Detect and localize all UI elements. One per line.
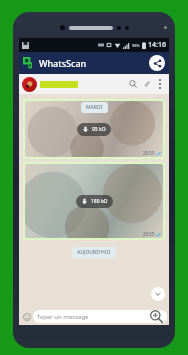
staticText: Taper un message <box>37 313 89 321</box>
staticText: AUJOURD'HUI <box>77 249 111 256</box>
staticText: 20:55 <box>143 150 155 156</box>
staticText: 14:16 <box>148 40 166 50</box>
staticText: 20:55 <box>143 231 155 237</box>
button[interactable]: Search <box>126 77 140 91</box>
button[interactable]: Taper un message <box>37 310 167 323</box>
button[interactable]: Scroll to bottom <box>151 287 165 301</box>
staticText: 98% <box>132 43 140 48</box>
button[interactable]: 95 kO <box>82 126 106 133</box>
button[interactable]: 180 kO <box>25 164 163 238</box>
staticText: 180 kO <box>91 198 108 205</box>
button[interactable]: 180 kO <box>81 198 108 205</box>
staticText: MARDI <box>86 104 103 111</box>
button[interactable]: Share <box>149 55 165 71</box>
staticText: WhatsScan <box>39 57 87 69</box>
button[interactable]: MARDI <box>25 101 163 157</box>
staticText: 95 kO <box>92 126 106 133</box>
button[interactable]: Emoji <box>21 311 32 322</box>
button[interactable]: Attach <box>140 77 154 91</box>
button[interactable]: More options <box>154 78 166 90</box>
